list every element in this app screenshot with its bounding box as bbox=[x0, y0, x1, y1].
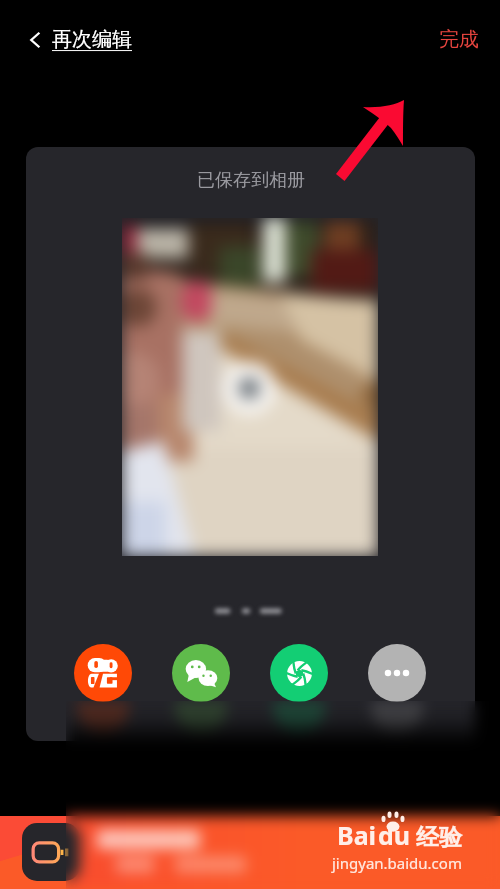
staticText: 完成 bbox=[439, 27, 479, 52]
button[interactable]: WeChat bbox=[172, 644, 230, 702]
button[interactable]: Kuaishou bbox=[74, 644, 132, 702]
staticText: 再次编辑 bbox=[52, 27, 132, 52]
button[interactable]: 完成 bbox=[439, 27, 479, 52]
button[interactable]: App bbox=[22, 823, 80, 881]
staticText: 经验 bbox=[416, 823, 462, 852]
staticText: jingyan.baidu.com bbox=[332, 853, 462, 873]
other: Back bbox=[24, 29, 46, 51]
staticText: 已保存到相册 bbox=[197, 169, 305, 192]
button[interactable]: Moments bbox=[270, 644, 328, 702]
button[interactable]: More bbox=[368, 644, 426, 702]
staticText: du bbox=[378, 818, 411, 852]
staticText: Bai bbox=[337, 818, 377, 852]
button[interactable]: Back bbox=[24, 27, 132, 52]
